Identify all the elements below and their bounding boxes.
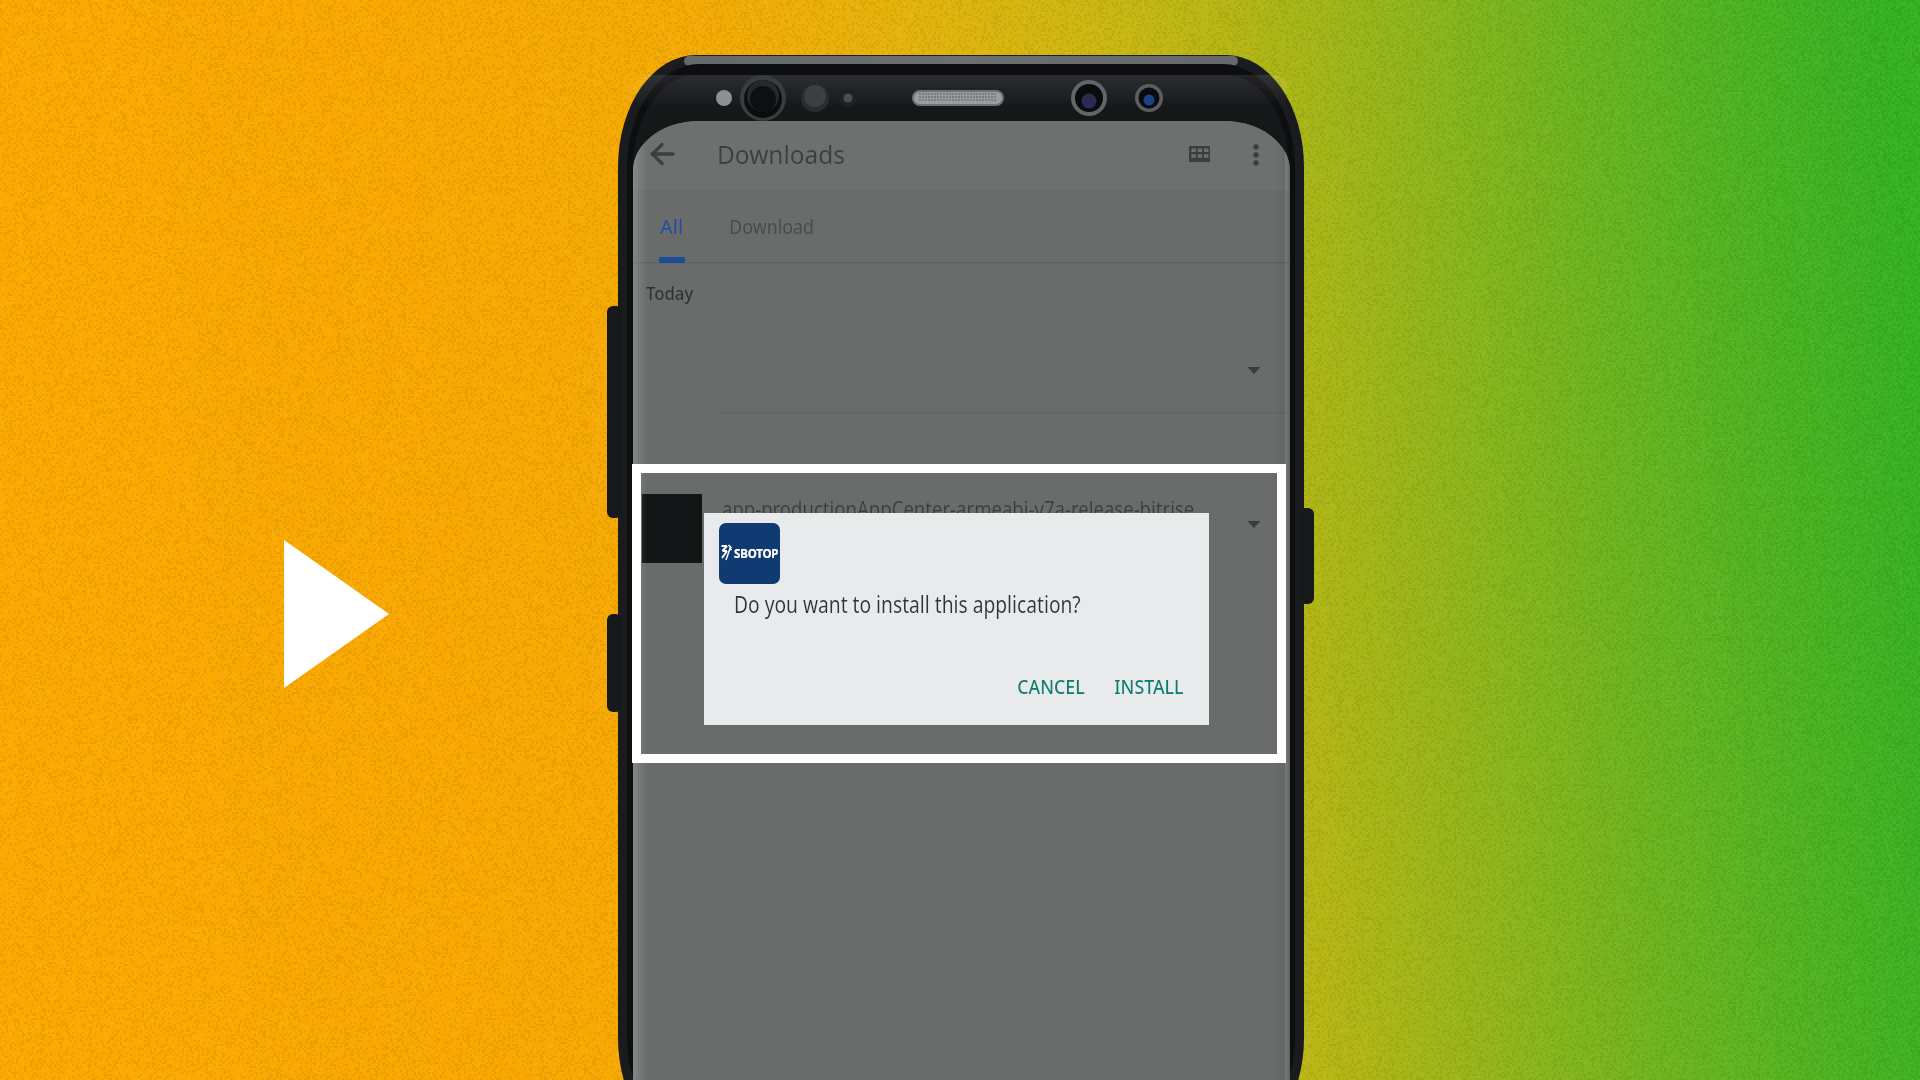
button[interactable]: All [639,193,705,265]
button[interactable]: CANCEL [1000,665,1102,707]
staticText: INSTALL [1114,673,1184,700]
staticText: app-productionAppCenter-armeabi-v7a-rele… [722,495,1194,524]
staticText: Downloads [717,136,846,171]
staticText: CANCEL [1017,673,1085,700]
staticText: All [660,213,684,240]
other: Play video [0,0,1920,1080]
button[interactable]: app-productionAppCenter-armeabi-v7a-rele… [633,470,1290,580]
button[interactable]: More options [1232,130,1280,178]
button[interactable]: Navigate up [639,130,687,178]
staticText: SBOTOP [734,544,779,562]
staticText: Do you want to install this application? [734,588,1081,619]
staticText: Today [646,281,693,306]
button[interactable]: Switch to grid view [1175,130,1223,178]
button[interactable]: INSTALL [1098,665,1200,707]
button[interactable]: Download [713,193,831,265]
staticText: Download [729,213,815,240]
